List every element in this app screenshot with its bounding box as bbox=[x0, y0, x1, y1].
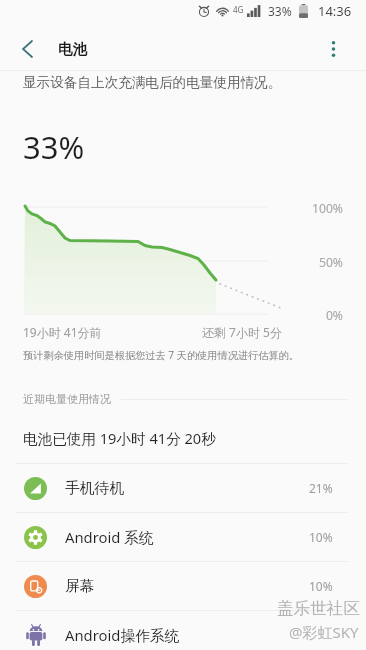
staticText: 50% bbox=[243, 254, 343, 271]
staticText: 21% bbox=[309, 480, 333, 496]
staticText: Android 系统 bbox=[65, 527, 154, 547]
button[interactable]: 手机待机 bbox=[0, 464, 366, 512]
staticText: 近期电量使用情况 bbox=[23, 392, 111, 406]
staticText: 显示设备自上次充满电后的电量使用情况。 bbox=[23, 74, 282, 91]
staticText: 14:36 bbox=[318, 2, 352, 20]
button[interactable]: Back bbox=[7, 29, 47, 69]
staticText: 电池已使用 19小时 41分 20秒 bbox=[23, 428, 216, 448]
button[interactable]: Android 系统 bbox=[0, 513, 366, 561]
staticText: 33% bbox=[23, 126, 85, 168]
staticText: 4G bbox=[233, 4, 244, 15]
staticText: @彩虹SKY bbox=[289, 622, 359, 642]
button[interactable]: More options bbox=[313, 29, 353, 69]
staticText: 盖乐世社区 bbox=[277, 598, 360, 619]
staticText: Android操作系统 bbox=[65, 625, 180, 645]
staticText: 屏幕 bbox=[65, 577, 95, 596]
staticText: 100% bbox=[243, 200, 343, 217]
staticText: 10% bbox=[309, 578, 333, 594]
staticText: 19小时 41分前 bbox=[23, 324, 102, 340]
staticText: 电池 bbox=[58, 40, 88, 58]
staticText: 还剩 7小时 5分 bbox=[202, 324, 282, 340]
staticText: 手机待机 bbox=[65, 479, 125, 498]
button[interactable]: Android操作系统 bbox=[0, 611, 366, 650]
staticText: 0% bbox=[243, 307, 343, 324]
staticText: 33% bbox=[268, 3, 292, 19]
button[interactable]: 屏幕 bbox=[0, 562, 366, 610]
staticText: 预计剩余使用时间是根据您过去 7 天的使用情况进行估算的。 bbox=[23, 348, 299, 362]
staticText: 10% bbox=[309, 529, 333, 545]
